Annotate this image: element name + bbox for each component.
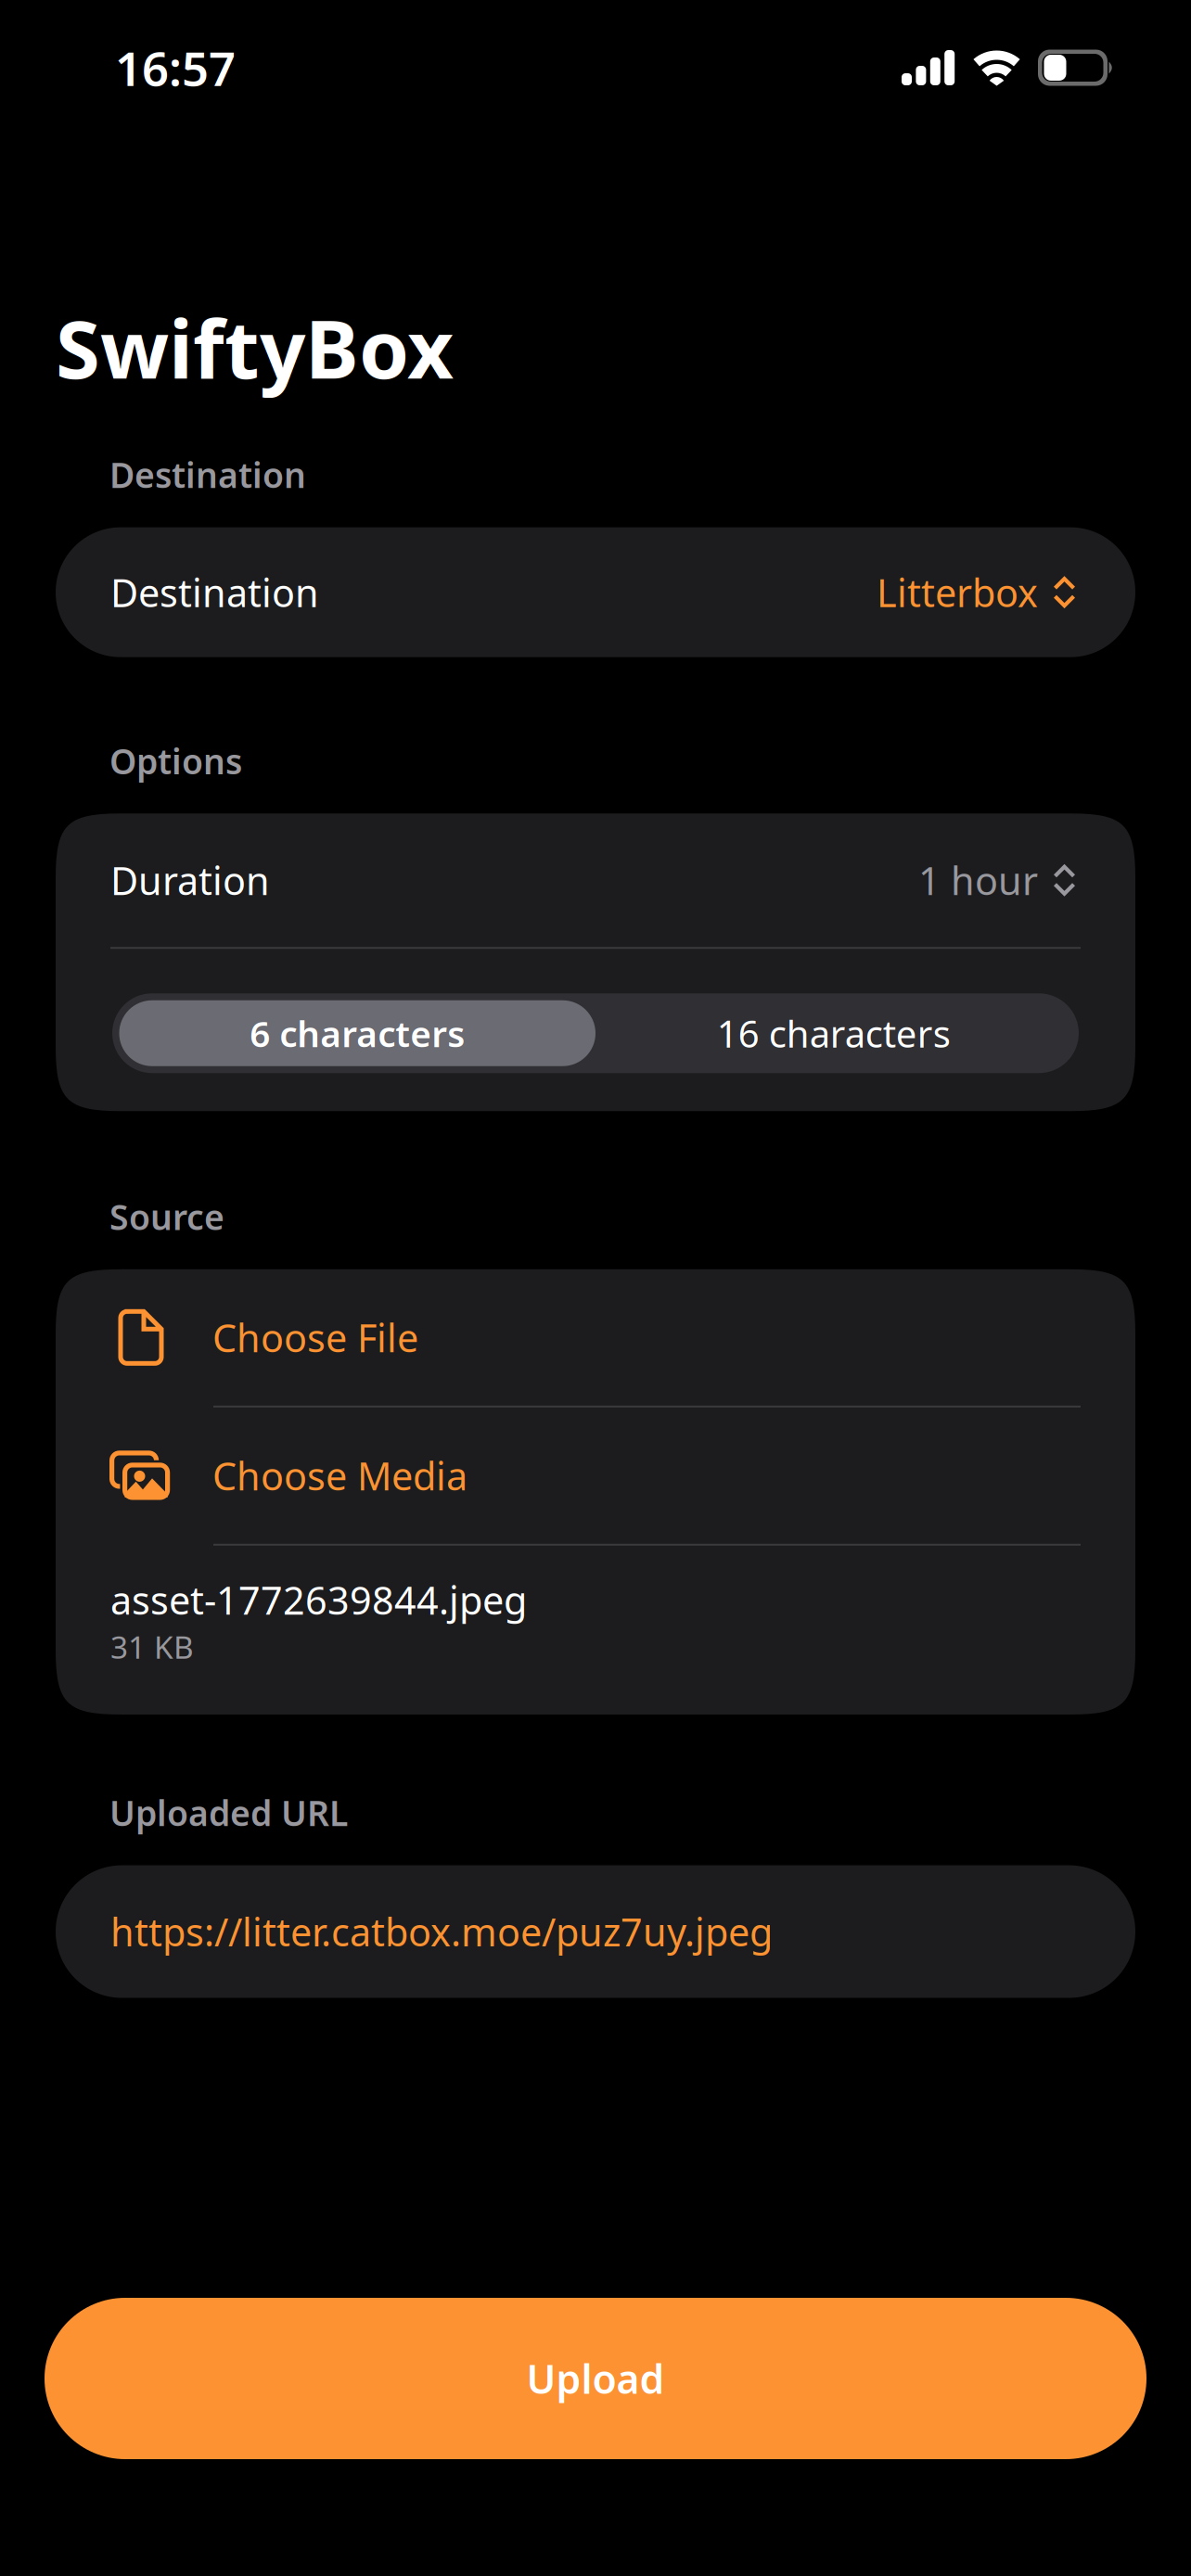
staticText: Options (109, 738, 242, 784)
button[interactable]: Upload (45, 2298, 1146, 2459)
button[interactable]: 16 characters (595, 1000, 1072, 1066)
staticText: SwiftyBox (56, 294, 454, 401)
button[interactable]: Choose Media (56, 1407, 1135, 1544)
staticText: Destination (110, 567, 319, 618)
staticText: Litterbox (877, 567, 1038, 618)
button[interactable]: https://litter.catbox.moe/puz7uy.jpeg (56, 1865, 1135, 1998)
staticText: Duration (110, 855, 270, 906)
staticText: 16:57 (115, 37, 236, 99)
staticText: Choose File (212, 1312, 418, 1363)
staticText: 6 characters (250, 1009, 465, 1057)
button[interactable]: 6 characters (119, 1000, 595, 1066)
staticText: Choose Media (212, 1450, 467, 1501)
staticText: 31 KB (110, 1626, 194, 1667)
staticText: asset-1772639844.jpeg (110, 1574, 527, 1625)
staticText: Source (109, 1194, 224, 1240)
button[interactable]: Destination (56, 527, 1135, 657)
button[interactable]: Duration (56, 813, 1135, 947)
button[interactable]: Choose File (56, 1269, 1135, 1406)
staticText: 1 hour (918, 855, 1038, 906)
staticText: Destination (109, 452, 306, 498)
staticText: Uploaded URL (109, 1790, 348, 1836)
staticText: https://litter.catbox.moe/puz7uy.jpeg (110, 1906, 773, 1957)
staticText: 16 characters (717, 1009, 951, 1058)
staticText: Upload (526, 2352, 665, 2405)
